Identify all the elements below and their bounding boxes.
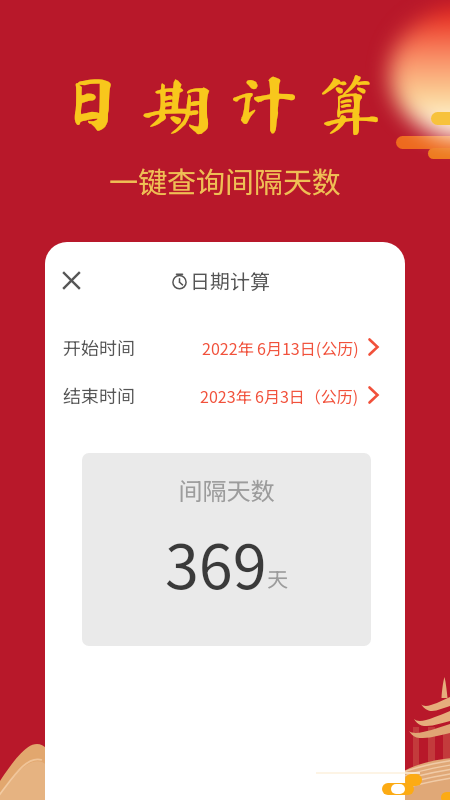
staticText: 日期计算 <box>0 72 450 134</box>
staticText: 2022年 6月13日(公历) <box>202 336 359 359</box>
staticText: 日期计算 <box>190 266 270 295</box>
staticText: 天 <box>267 563 288 593</box>
button[interactable]: 开始时间 <box>45 329 405 365</box>
staticText: 开始时间 <box>63 334 135 360</box>
staticText: 结束时间 <box>63 382 135 408</box>
staticText: 2023年 6月3日（公历) <box>200 384 359 407</box>
staticText: 一键查询间隔天数 <box>0 159 450 201</box>
button[interactable]: 结束时间 <box>45 377 405 413</box>
staticText: 间隔天数 <box>82 472 371 507</box>
button[interactable]: 关闭 <box>53 262 89 298</box>
staticText: 369 <box>165 518 267 606</box>
